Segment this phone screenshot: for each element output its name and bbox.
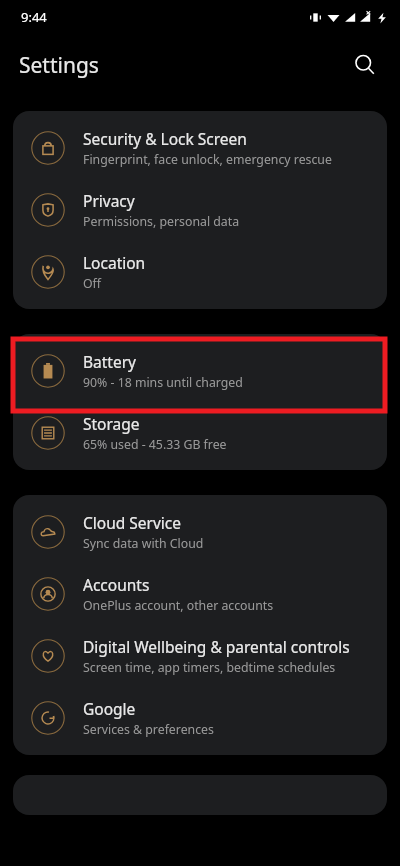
staticText: Location <box>83 252 146 273</box>
button[interactable]: Cloud Service <box>13 501 387 563</box>
staticText: Sync data with Cloud <box>83 535 204 552</box>
staticText: Security & Lock Screen <box>83 128 247 149</box>
staticText: Digital Wellbeing & parental controls <box>83 636 350 657</box>
staticText: OnePlus account, other accounts <box>83 597 274 614</box>
button[interactable]: Accounts <box>13 563 387 625</box>
button[interactable]: Storage <box>13 402 387 464</box>
staticText: Settings <box>19 51 99 80</box>
staticText: 90% - 18 mins until charged <box>83 374 243 391</box>
button[interactable]: Digital Wellbeing & parental controls <box>13 625 387 687</box>
staticText: Services & preferences <box>83 721 214 738</box>
staticText: Permissions, personal data <box>83 213 240 230</box>
staticText: Off <box>83 275 102 292</box>
button[interactable]: Security & Lock Screen <box>13 117 387 179</box>
staticText: Fingerprint, face unlock, emergency resc… <box>83 151 332 168</box>
staticText: Accounts <box>83 574 150 595</box>
button[interactable]: Google <box>13 687 387 749</box>
staticText: Google <box>83 698 136 719</box>
staticText: Screen time, app timers, bedtime schedul… <box>83 659 336 676</box>
staticText: Battery <box>83 351 137 372</box>
staticText: 65% used - 45.33 GB free <box>83 436 227 453</box>
staticText: Storage <box>83 413 140 434</box>
staticText: Privacy <box>83 190 135 211</box>
button[interactable]: Location <box>13 241 387 303</box>
button[interactable]: Privacy <box>13 179 387 241</box>
button[interactable]: Battery <box>13 340 387 402</box>
staticText: Cloud Service <box>83 512 182 533</box>
staticText: 9:44 <box>21 8 47 26</box>
button[interactable]: Search <box>342 42 388 88</box>
